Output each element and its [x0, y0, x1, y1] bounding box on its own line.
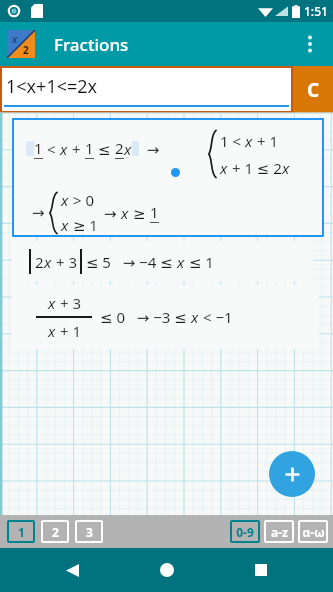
button[interactable]: α-ω	[298, 520, 328, 543]
button[interactable]: a-z	[264, 520, 294, 543]
button[interactable]: More options	[290, 24, 330, 64]
staticText: + 1	[253, 131, 278, 151]
button[interactable]: 1<x+1<=2x	[0, 66, 293, 113]
staticText: x	[245, 131, 253, 151]
staticText: x	[12, 31, 18, 46]
staticText: →	[104, 203, 121, 223]
staticText: 1:51	[304, 3, 328, 19]
button[interactable]: Home	[145, 548, 189, 592]
button[interactable]: 0-9	[230, 520, 260, 543]
staticText: x	[44, 252, 52, 272]
staticText: <	[43, 139, 60, 159]
button[interactable]: Back	[50, 548, 94, 592]
staticText: 1	[150, 202, 159, 222]
button[interactable]: 2	[12, 241, 313, 281]
staticText: + 1 ≤ 2	[228, 158, 282, 178]
staticText: a-z	[271, 524, 288, 540]
button[interactable]: 2	[41, 520, 69, 543]
staticText: 2	[115, 138, 124, 158]
staticText: 1<x+1<=2x	[6, 74, 98, 99]
staticText: > 0	[69, 190, 94, 210]
button[interactable]: x	[7, 30, 35, 58]
staticText: 0-9	[236, 524, 254, 540]
button[interactable]: 1	[7, 520, 35, 543]
staticText: x	[121, 203, 129, 223]
staticText: 1 <	[220, 131, 245, 151]
staticText: 1	[34, 138, 43, 158]
staticText: ≤ 1	[185, 252, 214, 272]
staticText: + 1	[56, 321, 81, 341]
staticText: x	[282, 158, 290, 178]
staticText: + 3	[52, 252, 77, 272]
staticText: x	[61, 190, 69, 210]
staticText: +	[68, 139, 85, 159]
button[interactable]: 3	[75, 520, 103, 543]
staticText: →	[139, 139, 160, 159]
staticText: 1	[18, 524, 25, 540]
staticText: x	[61, 215, 69, 235]
staticText: < −1	[199, 307, 233, 327]
staticText: 2	[52, 524, 59, 540]
button[interactable]: 1	[12, 118, 324, 237]
staticText: →	[32, 204, 45, 221]
staticText: 2	[23, 43, 29, 57]
button[interactable]: x	[12, 285, 319, 349]
staticText: x	[48, 321, 56, 341]
staticText: 3	[86, 524, 93, 540]
button[interactable]: Recents	[239, 548, 283, 592]
staticText: 2	[35, 252, 44, 272]
staticText: x	[48, 293, 56, 313]
staticText: ≤ 5 → −4 ≤	[82, 252, 177, 272]
staticText: x	[191, 307, 199, 327]
staticText: 1	[85, 138, 94, 158]
staticText: α-ω	[302, 524, 325, 540]
button[interactable]: C	[293, 66, 333, 113]
staticText: C	[307, 77, 320, 103]
staticText: + 3	[56, 293, 81, 313]
staticText: ≤ 0 → −3 ≤	[100, 307, 191, 327]
staticText: x	[60, 139, 68, 159]
staticText: ≤	[94, 139, 115, 159]
staticText: Fractions	[54, 33, 129, 56]
button[interactable]: Add	[269, 451, 315, 497]
staticText: ≥	[129, 203, 150, 223]
staticText: x	[124, 139, 132, 159]
staticText: x	[220, 158, 228, 178]
staticText: ≥ 1	[69, 215, 98, 235]
staticText: x	[177, 252, 185, 272]
